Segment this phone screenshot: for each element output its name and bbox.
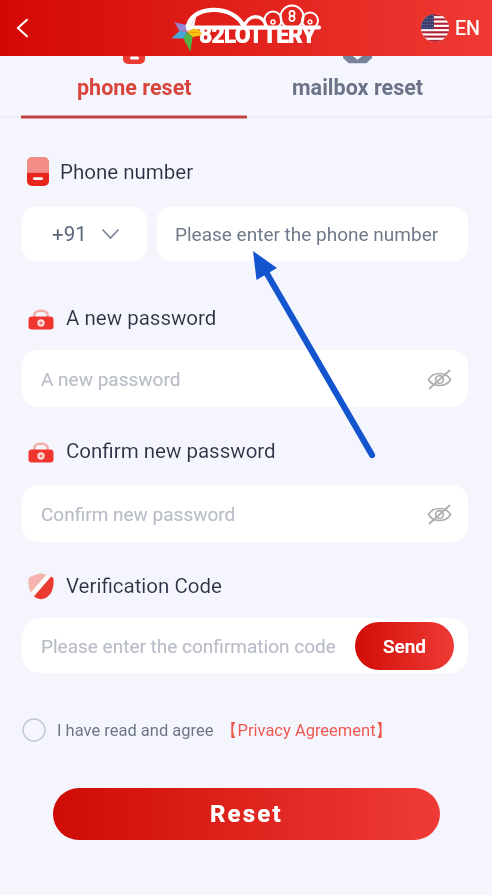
button[interactable]: Back [1,6,45,50]
staticText: Confirm new password [66,439,276,463]
button[interactable]: Confirm new password [22,485,468,542]
staticText: A new password [41,368,181,390]
button[interactable]: phone reset [22,58,246,117]
staticText: Verification Code [66,574,222,598]
staticText: I have read and agree [57,721,214,740]
button[interactable]: Reset [53,788,440,840]
staticText: 82LOTTERY [199,22,316,49]
button[interactable]: Show password [422,362,456,396]
button[interactable]: I have read and agree [22,718,393,742]
staticText: phone reset [77,75,192,100]
button[interactable]: Show password [422,497,456,531]
staticText: Phone number [60,160,194,184]
staticText: Confirm new password [41,503,236,525]
button[interactable]: EN [421,14,480,42]
staticText: A new password [66,306,217,330]
staticText: 【Privacy Agreement】 [221,720,393,741]
staticText: Reset [210,800,283,828]
staticText: Please enter the confirmation code [41,635,336,657]
staticText: mailbox reset [292,75,424,100]
button[interactable]: +91 [22,207,147,261]
staticText: Please enter the phone number [175,223,439,245]
button[interactable]: Send [355,622,454,670]
button[interactable]: Please enter the phone number [157,207,468,261]
button[interactable]: A new password [22,350,468,407]
button[interactable]: mailbox reset [246,58,470,117]
staticText: Send [383,635,426,657]
staticText: +91 [52,222,87,246]
staticText: EN [455,17,480,40]
